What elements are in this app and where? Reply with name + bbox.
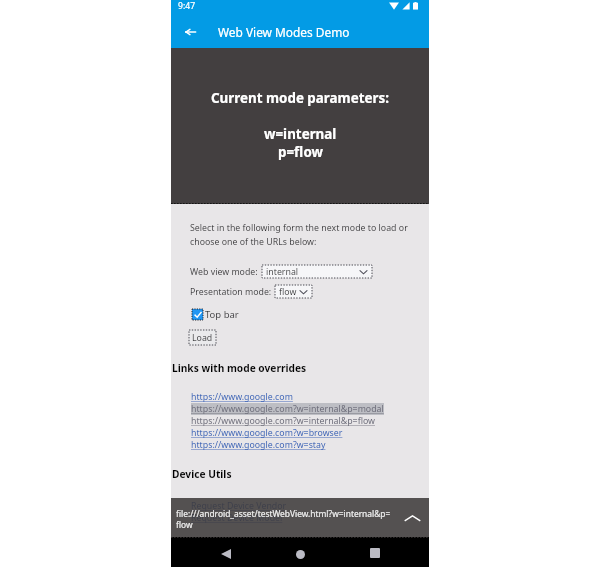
button[interactable]: Back xyxy=(208,542,243,566)
staticText: Select in the following form the next mo… xyxy=(190,222,411,247)
button[interactable]: Home xyxy=(283,542,318,566)
staticText: internal xyxy=(266,266,299,278)
button[interactable]: Load xyxy=(189,330,216,345)
staticText: https://www.google.com?w=internal&p=flow xyxy=(191,415,376,427)
button[interactable]: flow xyxy=(275,285,312,298)
button[interactable]: https://www.google.com?w=internal&p=moda… xyxy=(191,403,384,415)
staticText: Presentation mode: xyxy=(190,286,272,298)
staticText: flow xyxy=(279,286,297,298)
staticText: Current mode parameters: xyxy=(211,89,389,107)
button[interactable]: Top bar xyxy=(192,308,239,321)
staticText: p=flow xyxy=(278,143,323,161)
button[interactable]: Navigate up xyxy=(180,22,200,42)
button[interactable]: Expand url bar xyxy=(400,506,424,530)
button[interactable]: Recent apps xyxy=(357,541,392,565)
staticText: file:///android_asset/testWebView.html?w… xyxy=(176,508,391,519)
staticText: Request Device Model xyxy=(191,512,283,524)
staticText: https://www.google.com?w=browser xyxy=(191,427,343,439)
button[interactable]: https://www.google.com?w=internal&p=flow xyxy=(191,415,376,427)
staticText: https://www.google.com xyxy=(191,391,293,403)
staticText: w=internal xyxy=(264,125,337,143)
staticText: https://www.google.com?w=internal&p=moda… xyxy=(191,403,384,415)
button[interactable]: https://www.google.com?w=stay xyxy=(191,439,326,451)
staticText: Links with mode overrides xyxy=(172,361,307,375)
button[interactable]: file:///android_asset/testWebView.html?w… xyxy=(171,498,429,537)
button[interactable]: https://www.google.com?w=browser xyxy=(191,427,343,439)
button[interactable]: Request Device Vendor xyxy=(191,500,287,512)
button[interactable]: Request Device Model xyxy=(191,512,283,524)
staticText: Web View Modes Demo xyxy=(218,24,350,40)
button[interactable]: https://www.google.com xyxy=(191,391,293,403)
staticText: flow xyxy=(176,519,193,530)
staticText: https://www.google.com?w=stay xyxy=(191,439,326,451)
button[interactable]: internal xyxy=(262,265,372,278)
staticText: Device Utils xyxy=(172,467,232,481)
staticText: Web view mode: xyxy=(190,266,258,278)
staticText: 9:47 xyxy=(178,0,196,12)
staticText: Load xyxy=(192,332,213,344)
staticText: Top bar xyxy=(205,308,239,321)
staticText: Request Device Vendor xyxy=(191,500,287,512)
